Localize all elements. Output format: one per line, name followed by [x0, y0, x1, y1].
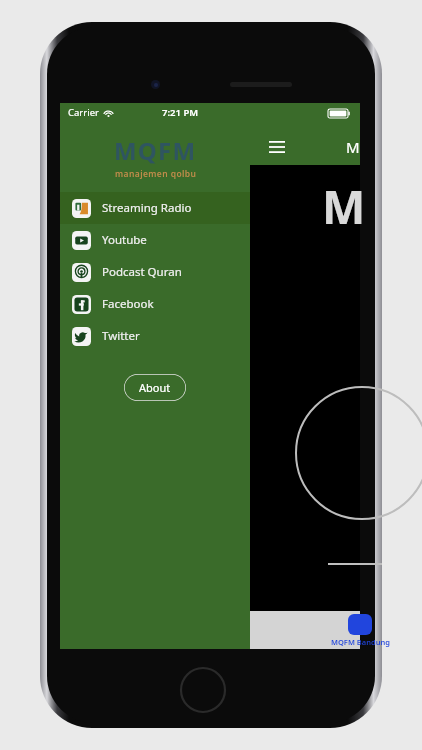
staticText: Podcast Quran — [102, 264, 182, 280]
button[interactable]: Facebook — [60, 288, 250, 320]
button[interactable]: Podcast Quran — [60, 256, 250, 288]
button[interactable]: MQFM Bandung — [315, 611, 405, 649]
staticText: MQFM Bandung — [331, 637, 390, 647]
staticText: Twitter — [102, 328, 140, 344]
staticText: Youtube — [102, 232, 147, 248]
staticText: MQFM — [114, 134, 197, 167]
staticText: M — [346, 137, 360, 157]
staticText: Carrier — [68, 106, 99, 119]
button[interactable]: About — [124, 374, 186, 401]
staticText: Streaming Radio — [102, 200, 192, 216]
staticText: 7:21 PM — [162, 106, 199, 119]
button[interactable]: Open navigation menu — [262, 132, 292, 162]
button[interactable]: Streaming Radio — [60, 192, 250, 224]
staticText: Facebook — [102, 296, 154, 312]
button[interactable]: Youtube — [60, 224, 250, 256]
staticText: manajemen qolbu — [115, 168, 197, 180]
button[interactable]: Twitter — [60, 320, 250, 352]
staticText: About — [139, 380, 171, 395]
staticText: M — [322, 175, 366, 238]
other: Home — [180, 667, 226, 713]
